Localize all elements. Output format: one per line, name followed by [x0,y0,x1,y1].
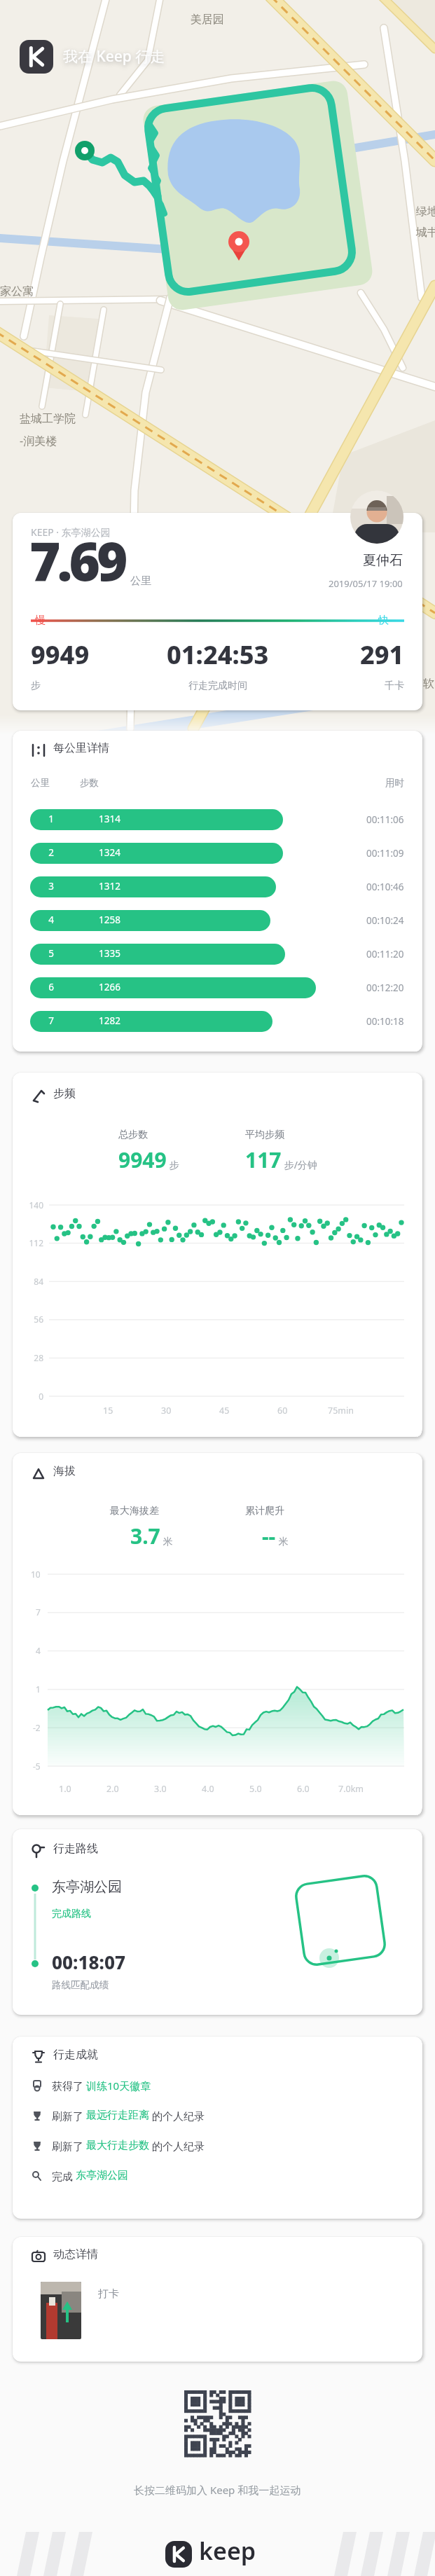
staticText: 米 [276,1534,289,1548]
staticText: 112 [29,1237,43,1248]
staticText: 获得了 [52,2079,86,2093]
staticText: -- [262,1522,276,1550]
staticText: 长按二维码加入 Keep 和我一起运动 [134,2483,301,2497]
staticText: 84 [34,1276,43,1287]
staticText: 00:10:24 [366,914,404,927]
staticText: 00:18:07 [52,1950,125,1974]
staticText: 路线匹配成绩 [52,1979,109,1991]
staticText: 3 [36,880,67,893]
staticText: 1335 [99,947,120,960]
staticText: 家公寓 [0,284,34,298]
staticText: 4 [36,1645,41,1656]
staticText: 75min [328,1405,354,1417]
staticText: 15 [103,1405,113,1417]
staticText: 00:10:18 [366,1015,404,1028]
button[interactable]: 刷新了 [52,2109,205,2123]
staticText: 步/分钟 [282,1158,317,1171]
staticText: 1312 [99,880,120,893]
staticText: 的个人纪录 [149,2109,205,2123]
staticText: 56 [34,1314,43,1325]
staticText: 盐城工学院 [20,412,76,426]
button[interactable]: 3 [30,876,276,897]
staticText: 2019/05/17 19:00 [329,577,403,590]
button[interactable] [165,2541,192,2568]
button[interactable]: 完成 [52,2169,128,2183]
staticText: 快 [378,614,389,627]
staticText: 140 [29,1199,43,1211]
button[interactable]: 4 [30,910,270,931]
staticText: 的个人纪录 [149,2139,205,2153]
staticText: 6.0 [297,1783,310,1795]
staticText: 1266 [99,981,120,993]
staticText: 动态详情 [53,2247,98,2261]
staticText: 3.7 [130,1522,160,1550]
button[interactable]: 1 [30,809,283,830]
staticText: 东亭湖公园 [52,1878,122,1896]
staticText: 每公里详情 [53,741,109,755]
staticText: 千卡 [385,680,404,692]
staticText: 4.0 [202,1783,214,1795]
staticText: 30 [161,1405,172,1417]
staticText: 完成 [52,2169,76,2183]
staticText: KEEP · 东亭湖公园 [31,525,111,539]
staticText: 117 [245,1145,282,1174]
staticText: 10 [31,1569,41,1580]
button[interactable] [41,2282,81,2339]
button[interactable] [350,490,403,544]
staticText: 最大行走步数 [86,2139,149,2152]
staticText: 东亭湖公园 [76,2169,128,2182]
staticText: 总步数 [118,1129,148,1141]
staticText: 累计爬升 [245,1505,284,1517]
staticText: 绿地 [416,205,435,219]
staticText: 01:24:53 [167,638,269,672]
staticText: 1314 [99,813,120,825]
staticText: 7.69 [29,524,125,597]
staticText: 步 [167,1158,179,1171]
button[interactable]: 7 [30,1011,272,1032]
staticText: 291 [360,638,404,672]
staticText: 6 [36,981,67,993]
button[interactable]: 获得了 [52,2079,151,2093]
button[interactable]: 刷新了 [52,2139,205,2153]
staticText: 45 [219,1405,230,1417]
staticText: 00:10:46 [366,881,404,893]
staticText: keep [199,2535,256,2567]
staticText: 公里 [31,777,50,789]
staticText: 软 [423,677,434,691]
staticText: 1258 [99,914,120,926]
staticText: -2 [33,1722,41,1733]
staticText: 00:11:20 [366,948,404,960]
staticText: 1324 [99,846,120,859]
staticText: 用时 [385,777,404,789]
staticText: 3.0 [154,1783,167,1795]
staticText: 步频 [53,1087,76,1101]
button[interactable]: 5 [30,944,285,965]
staticText: 刷新了 [52,2109,86,2123]
staticText: 2.0 [106,1783,119,1795]
staticText: 公里 [130,574,151,588]
staticText: 平均步频 [245,1129,284,1141]
staticText: 5.0 [249,1783,262,1795]
staticText: 夏仲石 [363,552,403,569]
button[interactable]: 2 [30,843,283,864]
staticText: 最大海拔差 [110,1505,159,1517]
staticText: 00:12:20 [366,982,404,994]
button[interactable] [20,40,53,74]
staticText: 1 [36,813,67,825]
staticText: 5 [36,947,67,960]
staticText: 9949 [31,638,90,672]
staticText: 训练10天徽章 [86,2079,151,2093]
staticText: 7 [36,1014,67,1027]
staticText: 我在 Keep 行走 [63,46,165,67]
staticText: 4 [36,914,67,926]
staticText: 美居园 [191,13,224,27]
staticText: 慢 [35,614,46,627]
staticText: 打卡 [98,2287,119,2301]
button[interactable]: 6 [30,977,316,998]
staticText: 7 [36,1606,41,1618]
staticText: 步 [31,680,41,692]
button[interactable]: 完成路线 [52,1908,91,1920]
staticText: 行走完成时间 [188,680,247,692]
staticText: 00:11:09 [366,847,404,860]
staticText: 2 [36,846,67,859]
